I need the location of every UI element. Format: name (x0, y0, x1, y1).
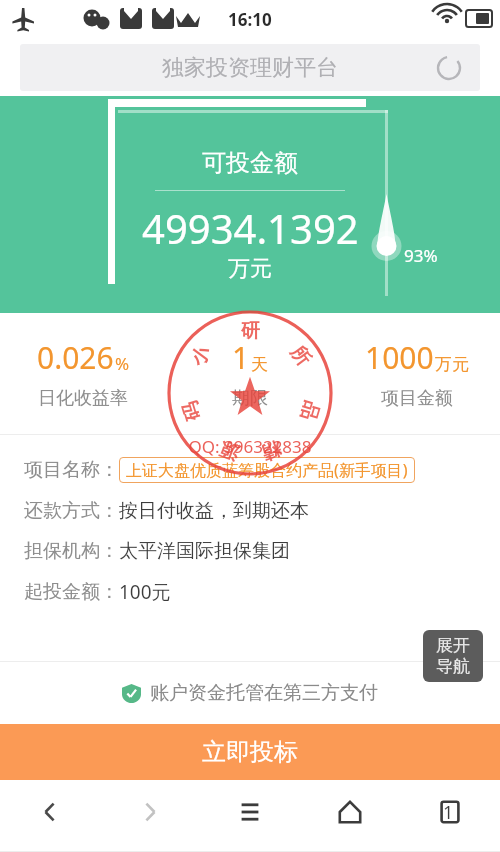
staticText: 日化收益率 (38, 387, 128, 410)
staticText: 0.026 (37, 337, 114, 378)
staticText: 独家投资理财平台 (162, 54, 338, 82)
staticText: 研 (241, 319, 260, 343)
staticText: 天 (251, 354, 268, 375)
staticText: % (115, 352, 130, 375)
staticText: QQ: 396322838 (188, 435, 312, 458)
staticText: 起投金额： (24, 580, 119, 604)
staticText: 太平洋国际担保集团 (119, 539, 290, 563)
staticText: 源 (216, 436, 243, 466)
staticText: 立即投标 (202, 737, 298, 767)
staticText: 可投金额 (202, 148, 298, 178)
staticText: 1000 (365, 337, 434, 378)
staticText: 还款方式： (24, 499, 119, 523)
staticText: 万元 (435, 354, 469, 375)
staticText: 上证大盘优质蓝筹股合约产品(新手项目) (126, 459, 408, 481)
other: Refresh (436, 55, 462, 81)
staticText: 担保机构： (24, 539, 119, 563)
button[interactable]: Home (300, 780, 400, 844)
staticText: 1 (232, 337, 250, 378)
staticText: 小 (185, 341, 216, 371)
button[interactable]: Menu (200, 780, 300, 844)
staticText: 100元 (119, 579, 171, 605)
button[interactable]: 立即投标 (0, 724, 500, 780)
staticText: 期限 (232, 387, 268, 410)
staticText: 按日付收益，到期还本 (119, 499, 309, 523)
staticText: 项目金额 (381, 387, 453, 410)
staticText: 导航 (436, 656, 470, 677)
staticText: 16:10 (228, 8, 272, 31)
staticText: 所 (285, 341, 316, 371)
button[interactable]: Tabs (400, 780, 500, 844)
staticText: 账户资金托管在第三方支付 (150, 681, 378, 705)
button[interactable]: 独家投资理财平台 (20, 44, 480, 91)
staticText: 展开 (436, 635, 470, 656)
button[interactable]: Back (0, 780, 100, 844)
button[interactable]: Forward (100, 780, 200, 844)
button[interactable]: 展开 (423, 630, 483, 682)
staticText: 项目名称： (24, 458, 119, 482)
staticText: 品 (295, 398, 324, 424)
staticText: 码 (177, 398, 206, 424)
staticText: 精 (258, 436, 285, 466)
staticText: 万元 (228, 255, 272, 283)
staticText: 1 (443, 800, 454, 825)
staticText: 93% (404, 244, 438, 267)
staticText: 49934.1392 (142, 201, 359, 255)
